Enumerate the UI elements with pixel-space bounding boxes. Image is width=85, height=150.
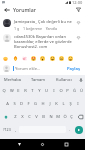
button[interactable]: R bbox=[22, 84, 29, 97]
button[interactable]: cdan4530k Başarıları onları kazandılar, … bbox=[0, 32, 85, 52]
button[interactable]: O bbox=[57, 84, 64, 97]
staticText: Ü bbox=[80, 88, 83, 94]
staticText: K bbox=[55, 101, 58, 107]
staticText: Tamam bbox=[31, 77, 45, 82]
button[interactable]: Merhaba bbox=[0, 75, 25, 84]
button[interactable]: Ş bbox=[67, 97, 74, 110]
staticText: O bbox=[59, 88, 63, 94]
button[interactable]: I bbox=[74, 97, 81, 110]
staticText: Ğ bbox=[73, 88, 76, 94]
button[interactable]: Send bbox=[75, 126, 83, 134]
staticText: B bbox=[42, 114, 45, 120]
button[interactable]: Back bbox=[15, 140, 24, 149]
button[interactable]: J bbox=[46, 97, 53, 110]
button[interactable]: Fire emoji bbox=[11, 54, 19, 62]
staticText: H bbox=[41, 101, 45, 107]
button[interactable]: Jamiepasta_ Çok değerli bu ne olduğunu b… bbox=[0, 17, 85, 32]
button[interactable]: B bbox=[40, 110, 47, 123]
button[interactable]: Shift bbox=[0, 110, 11, 123]
button[interactable]: F bbox=[25, 97, 32, 110]
button[interactable]: Ö bbox=[61, 110, 68, 123]
button[interactable]: Laugh emoji bbox=[48, 54, 56, 62]
staticText: 12:00 bbox=[72, 0, 83, 5]
staticText: Z bbox=[14, 114, 17, 120]
staticText: J bbox=[49, 101, 51, 107]
staticText: Kullanıcı bbox=[56, 77, 72, 82]
staticText: Merhaba bbox=[4, 77, 21, 82]
button[interactable]: Sort bbox=[73, 5, 83, 14]
button[interactable]: A bbox=[4, 97, 11, 110]
button[interactable]: T bbox=[29, 84, 36, 97]
button[interactable]: Recents bbox=[62, 140, 71, 149]
button[interactable]: X bbox=[19, 110, 26, 123]
button[interactable]: E bbox=[15, 84, 22, 97]
button[interactable]: Like bbox=[75, 34, 82, 41]
button[interactable]: Y bbox=[36, 84, 43, 97]
button[interactable]: P bbox=[64, 84, 71, 97]
button[interactable]: N bbox=[47, 110, 54, 123]
staticText: X bbox=[21, 114, 24, 120]
button[interactable]: Backspace bbox=[75, 110, 85, 123]
button[interactable]: Like bbox=[75, 19, 82, 26]
button[interactable]: Heart eyes emoji bbox=[29, 54, 37, 62]
button[interactable]: Sparkles emoji bbox=[20, 54, 28, 62]
button[interactable]: Tamam bbox=[25, 75, 51, 84]
staticText: Jamiepasta_ Çok değerli bu ne olduğunu b… bbox=[14, 19, 73, 25]
button[interactable]: Party emoji bbox=[1, 54, 9, 62]
button[interactable]: Q bbox=[0, 84, 8, 97]
button[interactable]: Sad emoji bbox=[57, 54, 65, 62]
staticText: U bbox=[45, 88, 48, 94]
staticText: S bbox=[13, 101, 16, 107]
button[interactable]: Surprised emoji bbox=[38, 54, 46, 62]
button[interactable]: K bbox=[53, 97, 60, 110]
button[interactable]: D bbox=[18, 97, 25, 110]
staticText: Ç bbox=[70, 114, 73, 120]
button[interactable]: Ü bbox=[78, 84, 85, 97]
staticText: T bbox=[31, 88, 34, 94]
button[interactable]: I bbox=[50, 84, 57, 97]
button[interactable]: ?123 bbox=[1, 124, 12, 135]
button[interactable]: Period bbox=[66, 124, 73, 135]
button[interactable]: Clap emoji bbox=[66, 54, 74, 62]
staticText: G bbox=[34, 101, 37, 107]
staticText: Ö bbox=[63, 114, 67, 120]
staticText: P bbox=[66, 88, 69, 94]
button[interactable]: S bbox=[11, 97, 18, 110]
staticText: I bbox=[77, 101, 79, 107]
staticText: cdan4530k Başarıları onları kazandılar, … bbox=[14, 34, 73, 49]
button[interactable]: Z bbox=[11, 110, 19, 123]
button[interactable]: Paylaş bbox=[66, 64, 82, 74]
button[interactable]: H bbox=[39, 97, 46, 110]
button[interactable]: C bbox=[26, 110, 33, 123]
button[interactable]: Back bbox=[2, 5, 12, 14]
staticText: A bbox=[6, 101, 9, 107]
button[interactable]: W bbox=[8, 84, 15, 97]
button[interactable]: L bbox=[60, 97, 67, 110]
button[interactable]: Kullanıcı bbox=[51, 75, 77, 84]
staticText: . bbox=[69, 127, 71, 132]
staticText: R bbox=[24, 88, 27, 94]
staticText: Q bbox=[2, 88, 6, 94]
button[interactable]: Comma bbox=[12, 124, 19, 135]
button[interactable]: Ğ bbox=[71, 84, 78, 97]
button[interactable]: G bbox=[32, 97, 39, 110]
button[interactable]: V bbox=[33, 110, 40, 123]
staticText: Paylaş bbox=[67, 66, 81, 72]
staticText: Yorumlar bbox=[13, 6, 36, 13]
staticText: D bbox=[20, 101, 23, 107]
button[interactable]: U bbox=[43, 84, 50, 97]
button[interactable]: Ç bbox=[68, 110, 75, 123]
staticText: Y bbox=[38, 88, 41, 94]
staticText: I bbox=[53, 88, 55, 94]
staticText: M bbox=[56, 114, 60, 120]
button[interactable]: Home bbox=[38, 140, 47, 149]
staticText: L bbox=[62, 101, 65, 107]
staticText: W bbox=[10, 88, 14, 94]
staticText: V bbox=[35, 114, 38, 120]
button[interactable]: Voice input bbox=[77, 75, 85, 84]
button[interactable]: M bbox=[54, 110, 61, 123]
staticText: ?123 bbox=[3, 127, 11, 132]
staticText: 1 g 1 beğenme Yanıtla bbox=[14, 26, 58, 31]
